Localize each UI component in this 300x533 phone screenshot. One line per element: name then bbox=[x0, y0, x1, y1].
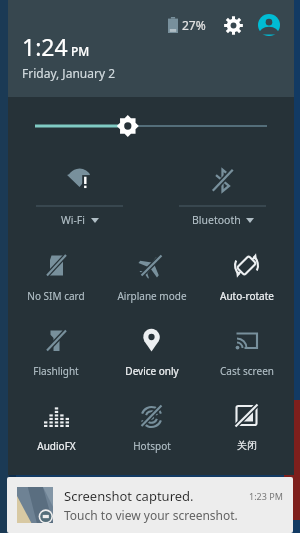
staticText: Wi-Fi bbox=[61, 213, 86, 227]
staticText: PM bbox=[71, 43, 90, 59]
button[interactable]: 关闭 bbox=[199, 389, 294, 464]
staticText: 1:23 PM bbox=[249, 490, 283, 502]
staticText: 1:24 bbox=[22, 31, 68, 62]
staticText: Airplane mode bbox=[117, 289, 187, 303]
staticText: 关闭 bbox=[237, 439, 257, 452]
staticText: AudioFX bbox=[37, 439, 76, 453]
staticText: Cast screen bbox=[220, 364, 274, 378]
staticText: Screenshot captured. bbox=[64, 487, 249, 505]
button[interactable]: Screenshot captured. bbox=[7, 477, 293, 533]
button[interactable]: AudioFX bbox=[8, 389, 104, 464]
button[interactable]: Flashlight bbox=[8, 314, 104, 389]
staticText: No SIM card bbox=[27, 289, 85, 303]
staticText: Auto-rotate bbox=[220, 289, 274, 303]
button[interactable]: Auto-rotate bbox=[199, 239, 294, 314]
button[interactable]: User profile bbox=[256, 12, 282, 38]
button[interactable]: Airplane mode bbox=[104, 239, 199, 314]
button[interactable]: Device only bbox=[104, 314, 199, 389]
staticText: Touch to view your screenshot. bbox=[64, 507, 238, 523]
button[interactable]: Hotspot bbox=[104, 389, 199, 464]
button[interactable]: Settings bbox=[220, 12, 246, 38]
staticText: Device only bbox=[125, 364, 179, 378]
staticText: Bluetooth bbox=[192, 213, 241, 227]
button[interactable]: No SIM card bbox=[8, 239, 104, 314]
staticText: 27% bbox=[182, 17, 206, 33]
staticText: Flashlight bbox=[33, 364, 79, 378]
button[interactable]: Cast screen bbox=[199, 314, 294, 389]
button[interactable]: Wi-Fi bbox=[8, 155, 151, 233]
staticText: Friday, January 2 bbox=[22, 65, 116, 81]
staticText: Hotspot bbox=[133, 439, 171, 453]
button[interactable]: Brightness bbox=[8, 97, 294, 155]
button[interactable]: Bluetooth bbox=[151, 155, 294, 233]
